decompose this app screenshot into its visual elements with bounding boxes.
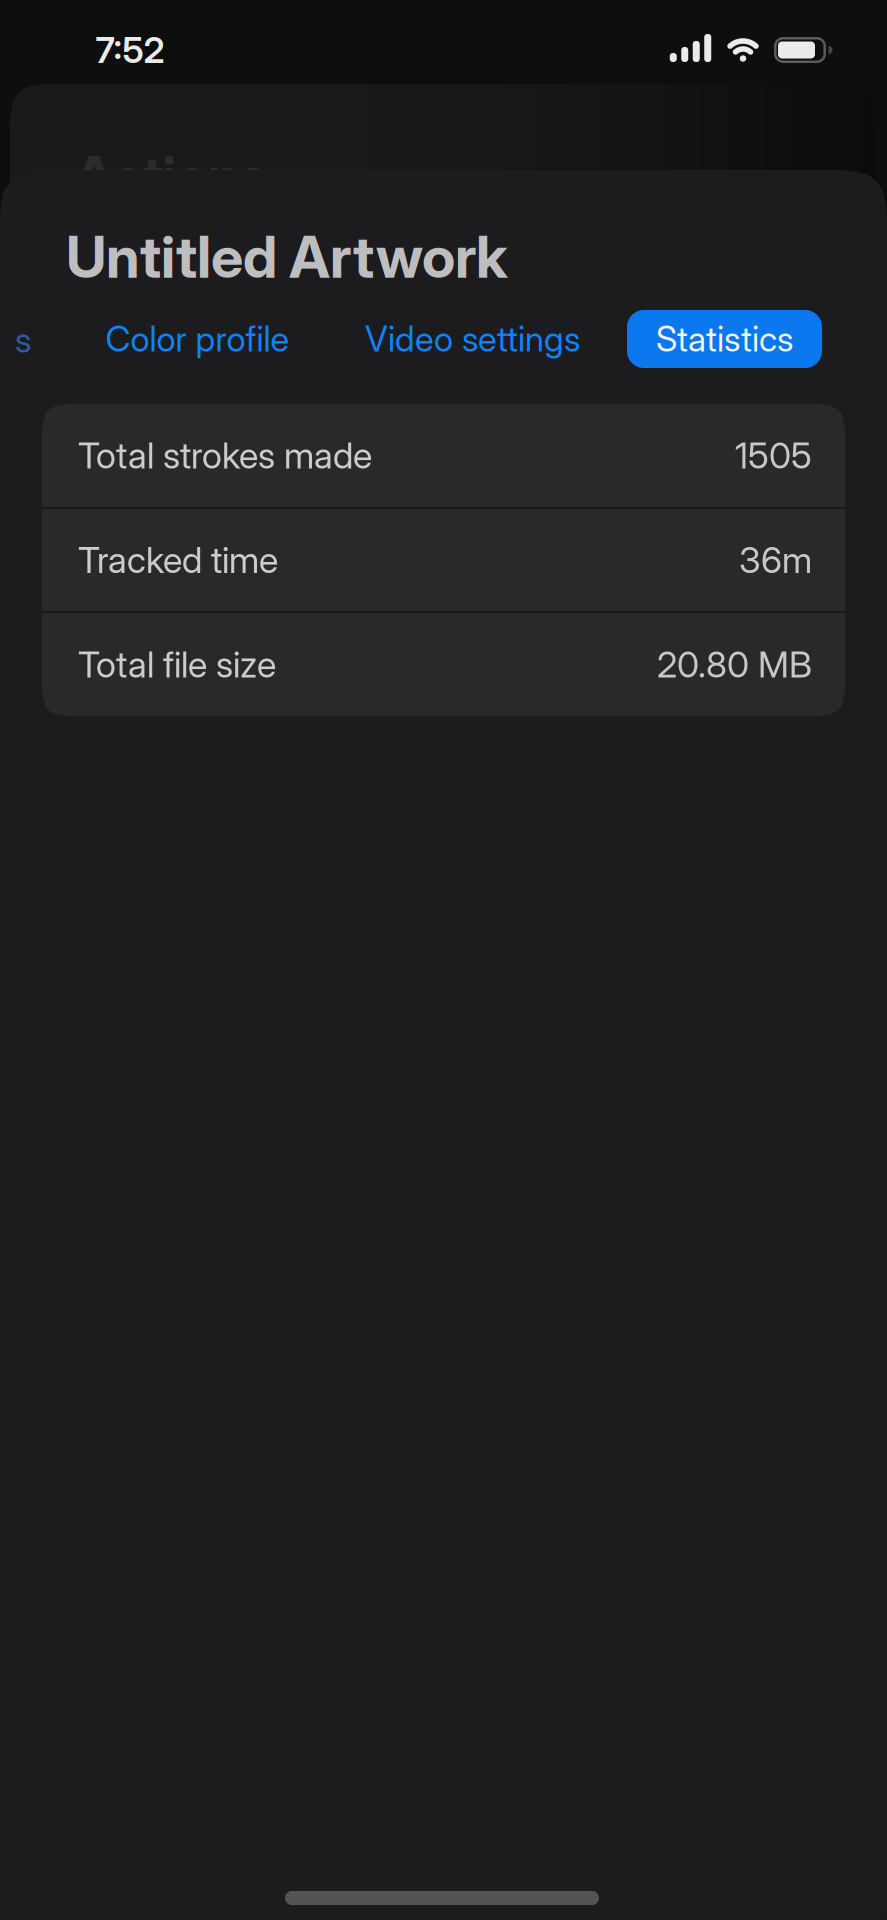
staticText: 20.80 MB [657,643,812,686]
staticText: s [15,320,31,360]
staticText: Total strokes made [78,434,372,477]
staticText: Video settings [365,319,580,359]
button[interactable]: Statistics [627,310,822,368]
staticText: Tracked time [78,539,278,581]
staticText: Color profile [105,319,289,359]
button[interactable]: Video settings [365,310,580,368]
staticText: Total file size [78,643,276,686]
button[interactable]: Canvas settings [1,311,45,369]
staticText: 36m [739,539,812,581]
staticText: 7:52 [95,29,164,71]
button[interactable]: Color profile [105,310,289,368]
staticText: Actions [74,144,267,208]
staticText: Untitled Artwork [66,223,508,291]
staticText: Statistics [656,319,793,359]
staticText: 1505 [735,434,812,477]
